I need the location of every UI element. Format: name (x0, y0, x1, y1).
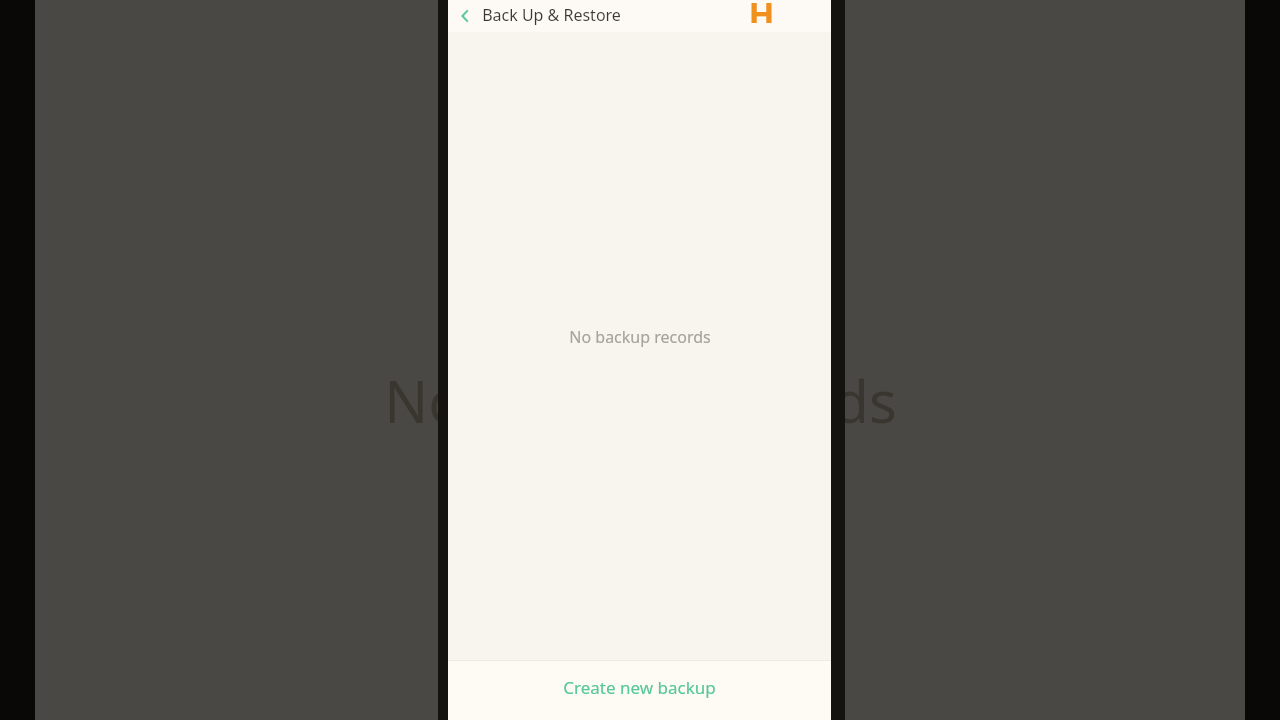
staticText: No backup records (384, 361, 897, 440)
staticText: H (748, 0, 775, 23)
staticText: Create new backup (563, 676, 716, 699)
button[interactable]: Back (448, 0, 482, 32)
staticText: No backup records (569, 326, 711, 348)
button[interactable]: Create new backup (448, 661, 831, 720)
button[interactable]: Help (741, 0, 781, 23)
staticText: Back Up & Restore (482, 4, 621, 26)
